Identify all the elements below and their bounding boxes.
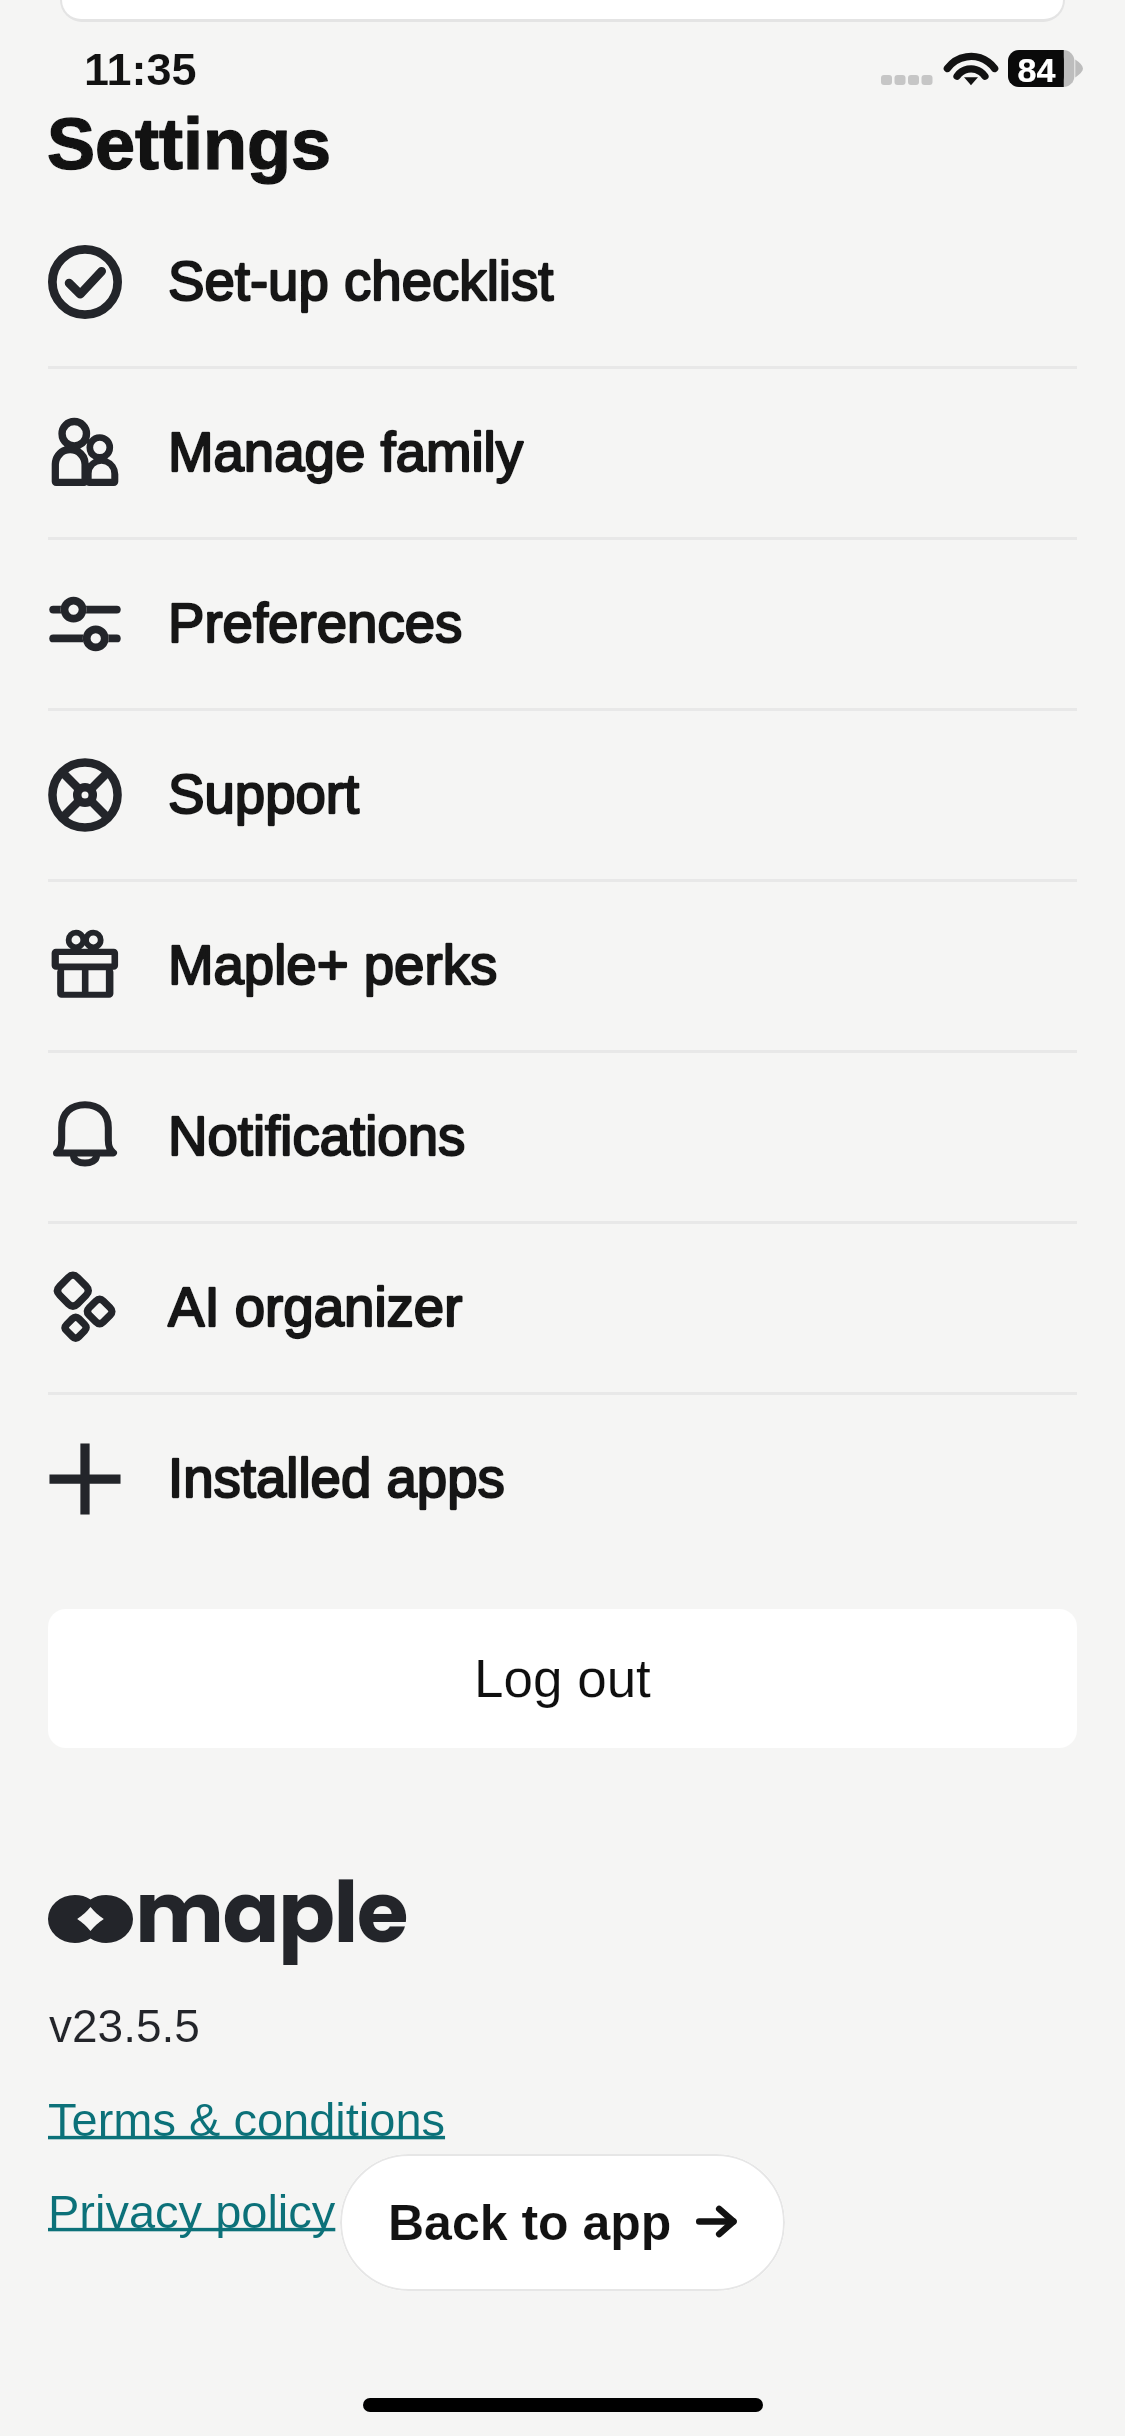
staticText: Preferences — [168, 593, 463, 654]
button[interactable]: Support — [0, 709, 1125, 880]
other: Cellular signal — [881, 75, 935, 85]
staticText: Notifications — [168, 1106, 466, 1167]
button[interactable]: Manage family — [0, 367, 1125, 538]
button[interactable]: Privacy policy — [48, 2185, 336, 2238]
button[interactable]: Back to app — [340, 2154, 785, 2291]
staticText: Installed apps — [168, 1448, 505, 1509]
staticText: 84 — [1009, 51, 1064, 89]
button[interactable]: Terms & conditions — [48, 2093, 446, 2146]
button[interactable]: Log out — [48, 1609, 1077, 1748]
button[interactable]: Preferences — [0, 538, 1125, 709]
staticText: Settings — [47, 104, 332, 184]
button[interactable]: Set-up checklist — [0, 196, 1125, 367]
button[interactable]: Installed apps — [0, 1393, 1125, 1564]
other: Wi-Fi — [948, 51, 994, 85]
staticText: Notifications — [168, 1106, 466, 1167]
staticText: AI organizer — [168, 1277, 463, 1338]
staticText: Preferences — [168, 593, 463, 654]
staticText: Manage family — [168, 422, 524, 483]
staticText: Back to app — [388, 2195, 672, 2251]
staticText: Support — [168, 764, 360, 825]
staticText: Installed apps — [168, 1448, 505, 1509]
staticText: maple — [135, 1854, 408, 1972]
staticText: Support — [168, 764, 360, 825]
staticText: Set-up checklist — [168, 251, 554, 312]
staticText: Maple+ perks — [168, 935, 498, 996]
button[interactable]: Notifications — [0, 1051, 1125, 1222]
other: Battery 84 percent — [1008, 50, 1083, 87]
staticText: v23.5.5 — [49, 2000, 200, 2051]
staticText: Set-up checklist — [168, 251, 554, 312]
staticText: 11:35 — [84, 44, 197, 94]
button[interactable]: AI organizer — [0, 1222, 1125, 1393]
staticText: AI organizer — [168, 1277, 463, 1338]
button[interactable]: Maple+ perks — [0, 880, 1125, 1051]
staticText: Log out — [474, 1649, 651, 1708]
staticText: Settings — [47, 104, 332, 184]
staticText: Manage family — [168, 422, 524, 483]
staticText: Maple+ perks — [168, 935, 498, 996]
